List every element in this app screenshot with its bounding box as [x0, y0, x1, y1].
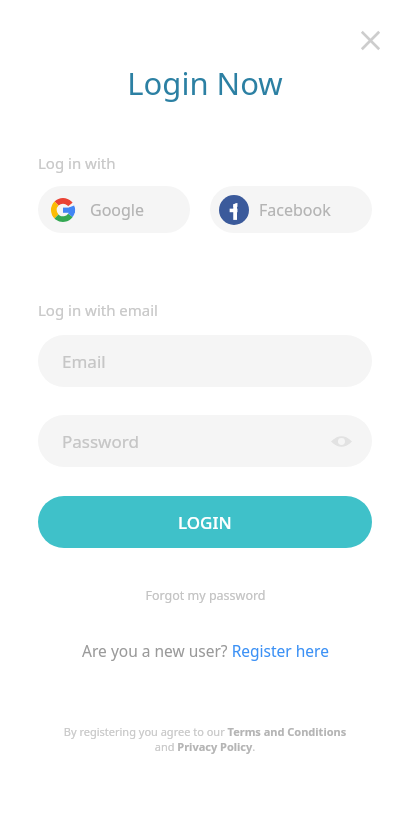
staticText: Forgot my password — [145, 587, 266, 604]
button[interactable]: Show password — [324, 424, 358, 458]
button[interactable]: Password — [38, 415, 372, 467]
button[interactable]: Forgot my password — [137, 583, 274, 608]
staticText: LOGIN — [178, 511, 232, 534]
button[interactable]: Close — [348, 18, 392, 62]
button[interactable]: LOGIN — [38, 496, 372, 548]
staticText: Are you a new user? Register here — [82, 640, 329, 661]
staticText: Password — [62, 430, 139, 453]
button[interactable]: Google — [38, 186, 190, 233]
staticText: Login Now — [127, 62, 283, 104]
button[interactable]: Facebook — [210, 186, 372, 233]
staticText: Log in with — [38, 153, 116, 173]
button[interactable]: Are you a new user? Register here — [74, 636, 337, 665]
staticText: Facebook — [259, 199, 331, 221]
staticText: Email — [62, 350, 106, 373]
staticText: Log in with email — [38, 300, 158, 320]
button[interactable]: Email — [38, 335, 372, 387]
staticText: Google — [90, 199, 145, 221]
staticText: By registering you agree to our Terms an… — [60, 724, 350, 754]
